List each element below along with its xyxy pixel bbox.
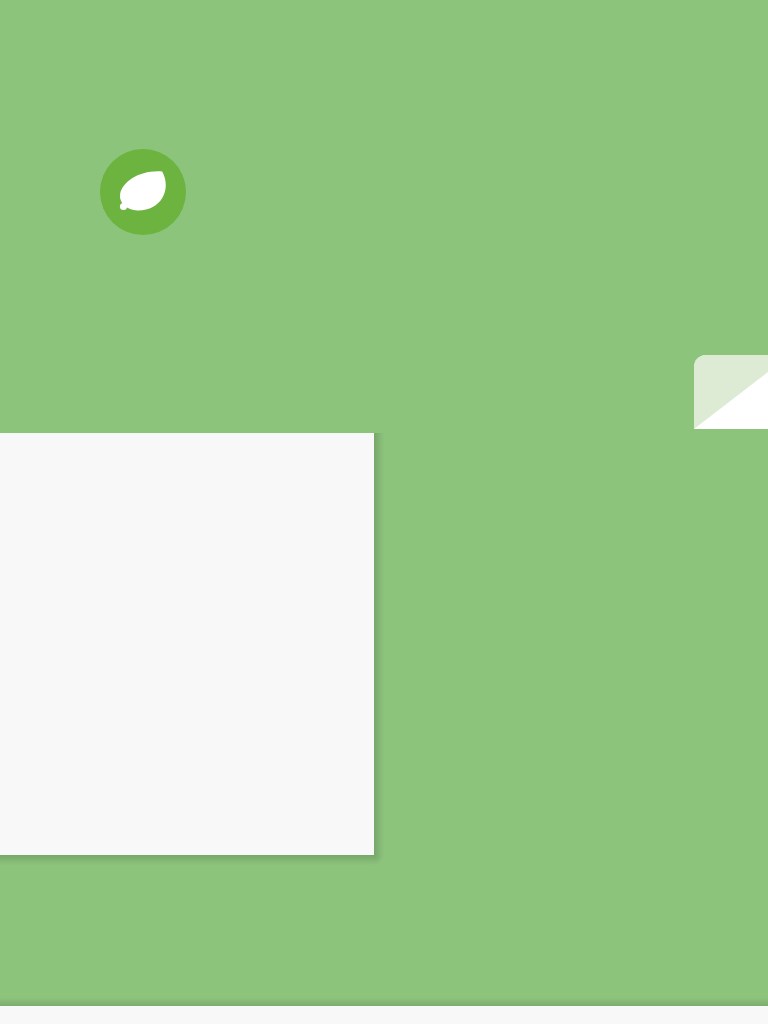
- button[interactable]: Spring: [100, 149, 186, 235]
- button[interactable]: Card: [694, 355, 768, 429]
